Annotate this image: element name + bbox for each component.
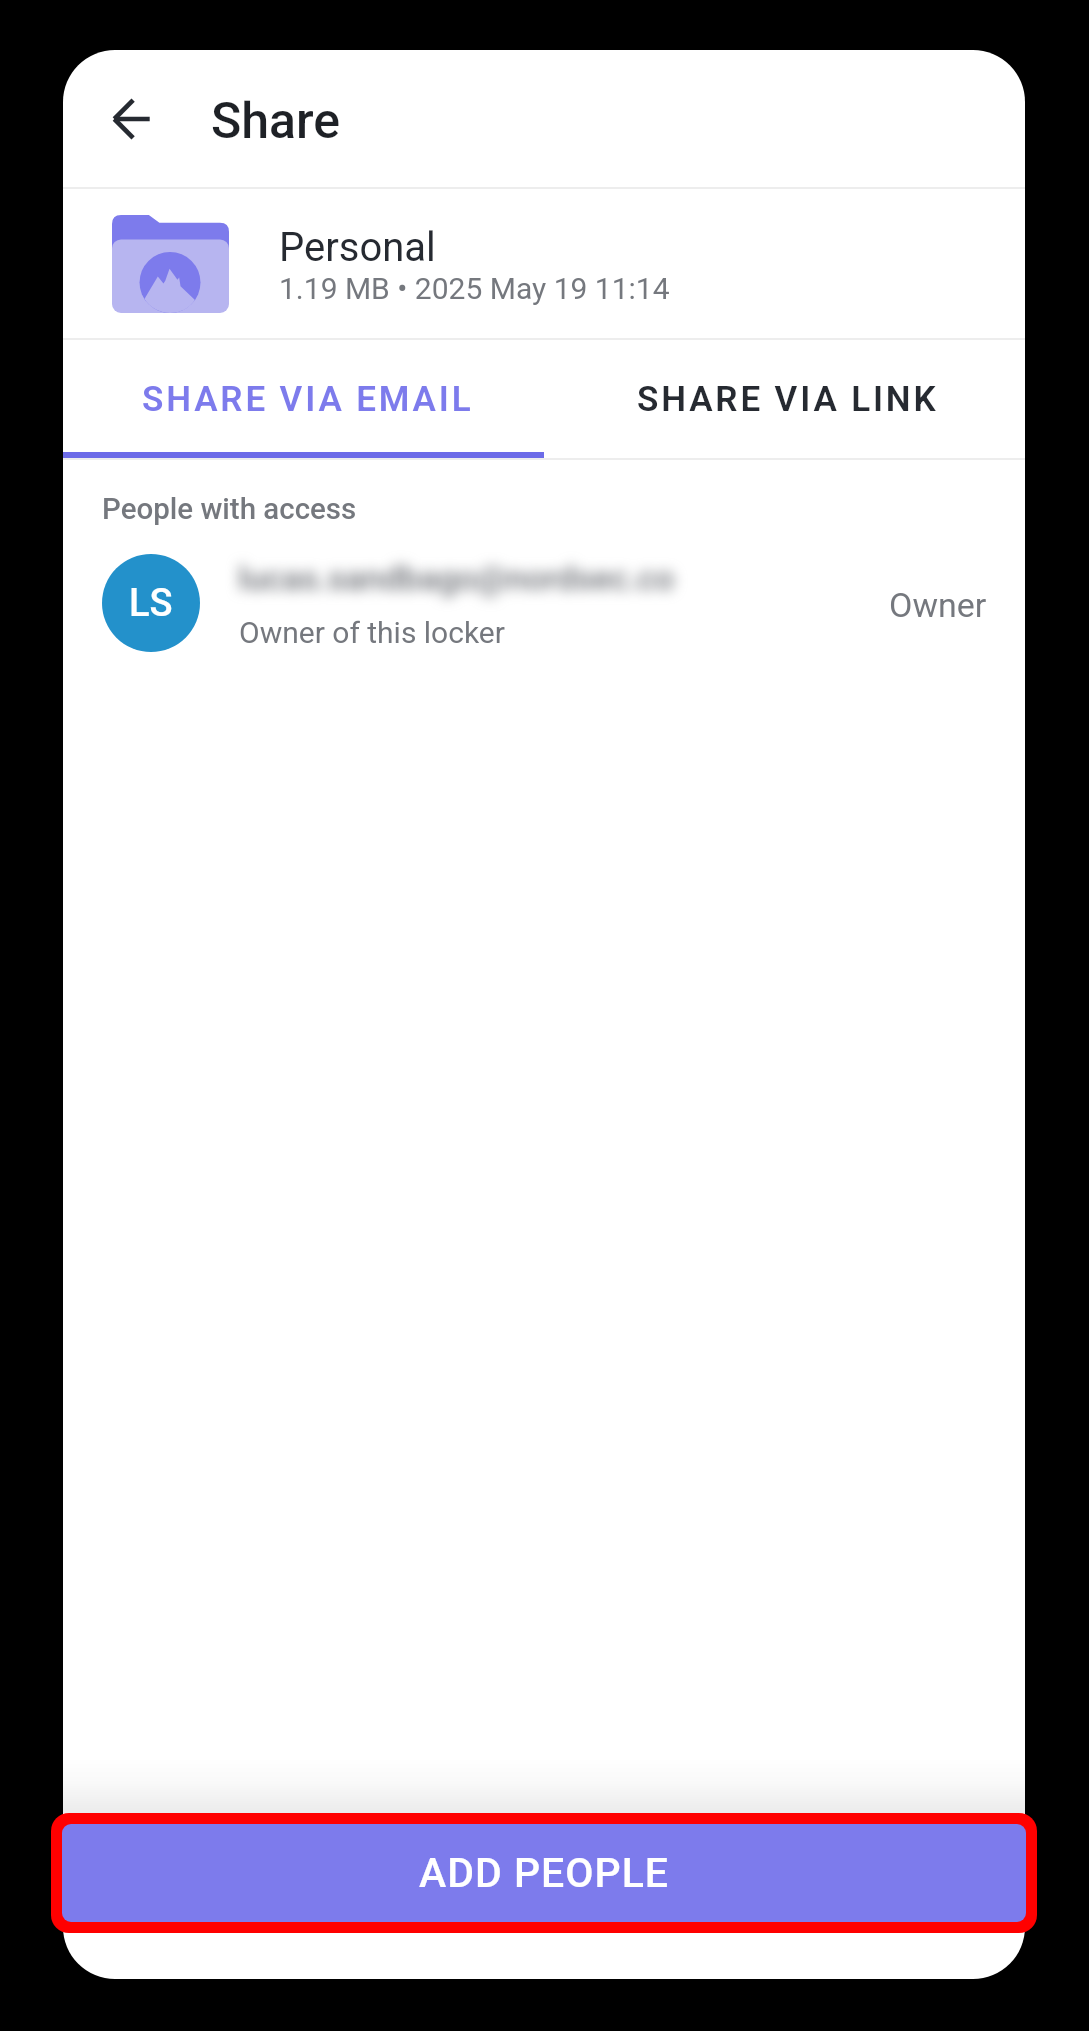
button[interactable]: LS — [63, 551, 1025, 669]
staticText: lucas.sandbago@nordsec.co — [238, 558, 675, 598]
staticText: 1.19 MB • 2025 May 19 11:14 — [279, 271, 670, 306]
button[interactable]: Personal — [63, 189, 1025, 338]
staticText: LS — [129, 581, 173, 626]
staticText: Owner — [889, 585, 987, 625]
button[interactable]: SHARE VIA EMAIL — [63, 340, 544, 458]
staticText: SHARE VIA EMAIL — [142, 379, 474, 420]
staticText: Share — [211, 92, 341, 151]
button[interactable]: SHARE VIA LINK — [544, 340, 1025, 458]
staticText: Owner of this locker — [239, 615, 505, 650]
button[interactable]: Back — [84, 71, 180, 167]
staticText: People with access — [102, 492, 357, 527]
staticText: Personal — [279, 224, 436, 271]
staticText: ADD PEOPLE — [419, 1849, 669, 1897]
button[interactable]: ADD PEOPLE — [62, 1824, 1026, 1922]
staticText: SHARE VIA LINK — [637, 379, 939, 420]
